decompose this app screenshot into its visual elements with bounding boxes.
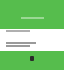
button[interactable]: Shopping bag — [30, 56, 34, 61]
